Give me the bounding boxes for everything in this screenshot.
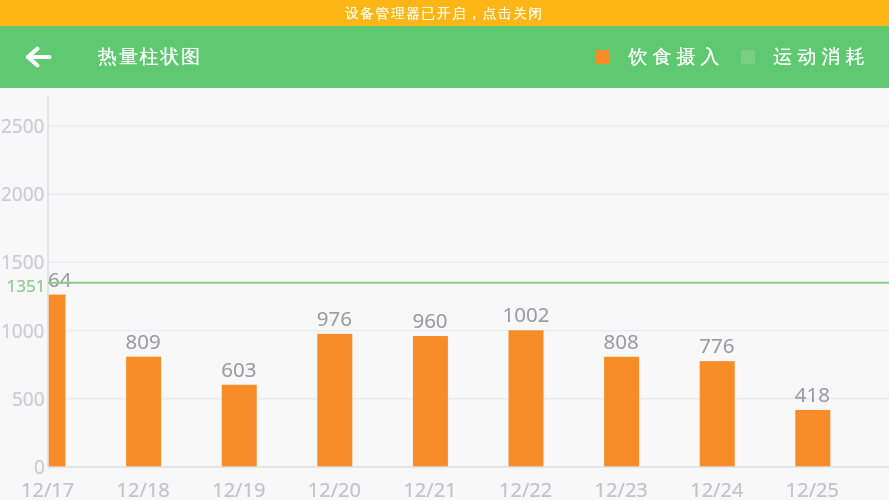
button[interactable]: 饮食摄入 [596, 26, 722, 88]
staticText: 运动消耗 [771, 45, 867, 69]
button[interactable]: 设备管理器已开启，点击关闭 [0, 0, 889, 26]
staticText: 热量柱状图 [97, 45, 201, 69]
staticText: 设备管理器已开启，点击关闭 [345, 5, 544, 22]
button[interactable] [0, 26, 76, 88]
button[interactable]: 运动消耗 [741, 26, 867, 88]
staticText: 饮食摄入 [626, 45, 722, 69]
